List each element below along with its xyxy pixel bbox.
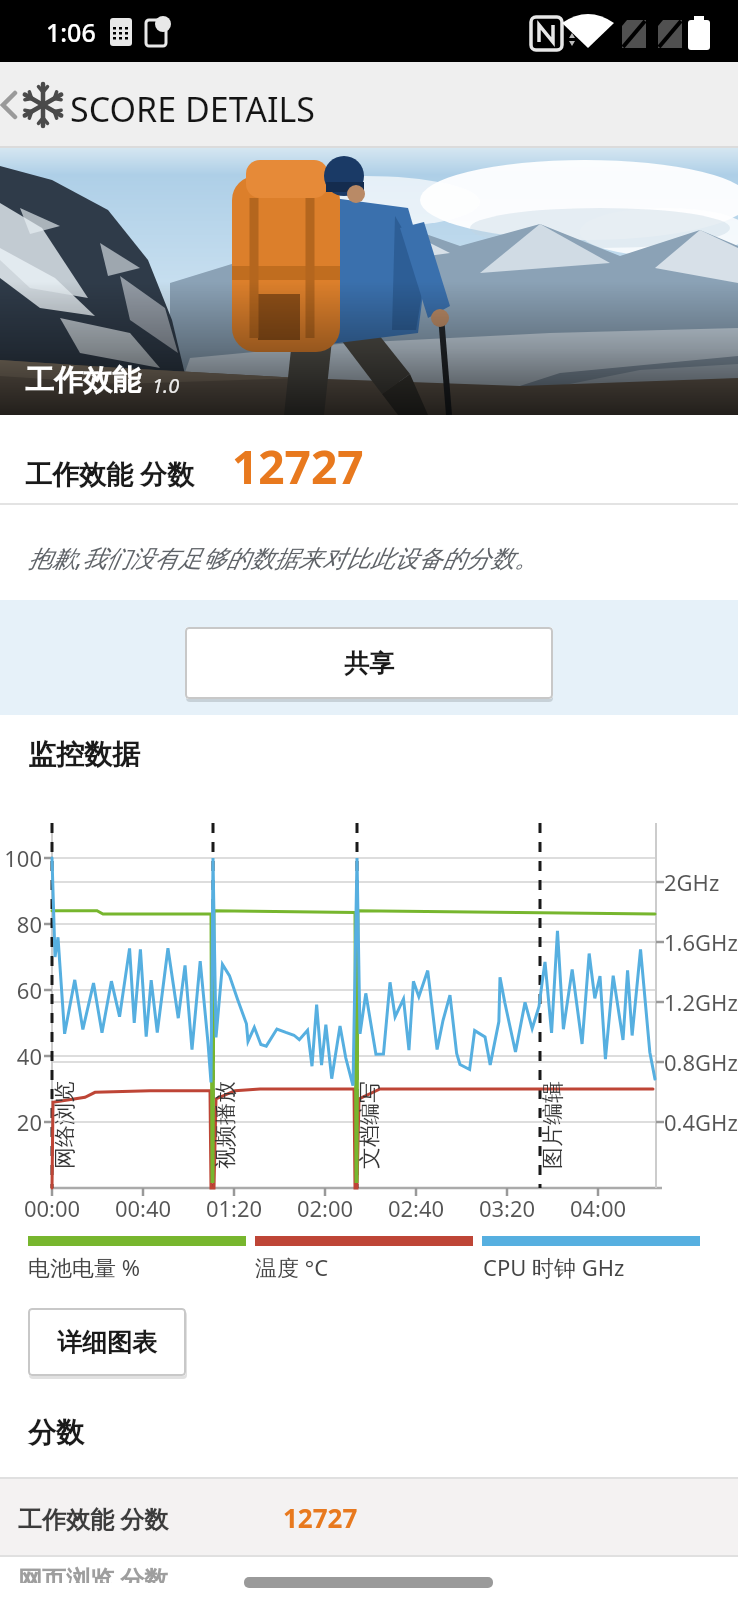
staticText: 20 — [0, 1107, 42, 1137]
button[interactable]: 网页浏览 分数 — [0, 1557, 738, 1583]
staticText: 1:06 — [46, 15, 96, 49]
staticText: 1.0 — [152, 372, 180, 399]
staticText: 文档编写 — [356, 1081, 384, 1169]
staticText: 60 — [0, 975, 42, 1005]
staticText: 温度 °C — [255, 1252, 329, 1282]
staticText: 工作效能 分数 — [18, 1502, 169, 1535]
button[interactable]: 共享 — [185, 627, 553, 699]
staticText: 1.2GHz — [664, 987, 738, 1017]
staticText: 2GHz — [664, 867, 720, 897]
staticText: 网页浏览 分数 — [18, 1562, 169, 1583]
staticText: 12727 — [232, 435, 364, 498]
staticText: 100 — [0, 843, 42, 873]
staticText: 03:20 — [473, 1193, 541, 1223]
staticText: 电池电量 % — [28, 1252, 141, 1282]
staticText: 40 — [0, 1041, 42, 1071]
staticText: 02:00 — [291, 1193, 359, 1223]
staticText: 0.8GHz — [664, 1047, 738, 1077]
staticText: 抱歉,我们没有足够的数据来对比此设备的分数。 — [28, 541, 539, 574]
staticText: CPU 时钟 GHz — [483, 1252, 625, 1282]
button[interactable] — [0, 62, 64, 148]
staticText: 图片编辑 — [539, 1081, 567, 1169]
staticText: 0.4GHz — [664, 1107, 738, 1137]
button[interactable]: 详细图表 — [28, 1308, 186, 1376]
staticText: 网络浏览 — [51, 1081, 79, 1169]
staticText: 分数 — [28, 1415, 84, 1450]
staticText: 01:20 — [200, 1193, 268, 1223]
staticText: 04:00 — [564, 1193, 632, 1223]
staticText: 80 — [0, 909, 42, 939]
staticText: 详细图表 — [57, 1327, 157, 1358]
staticText: 1.6GHz — [664, 927, 738, 957]
staticText: 工作效能 — [25, 362, 141, 399]
staticText: 工作效能 分数 — [25, 455, 195, 492]
staticText: 00:40 — [109, 1193, 177, 1223]
staticText: 12727 — [283, 1500, 358, 1535]
staticText: 02:40 — [382, 1193, 450, 1223]
staticText: 00:00 — [18, 1193, 86, 1223]
staticText: SCORE DETAILS — [70, 86, 315, 132]
button[interactable]: 工作效能 分数 — [0, 1479, 738, 1555]
staticText: 监控数据 — [28, 737, 140, 772]
staticText: 视频播放 — [212, 1081, 240, 1169]
staticText: 共享 — [344, 648, 394, 679]
